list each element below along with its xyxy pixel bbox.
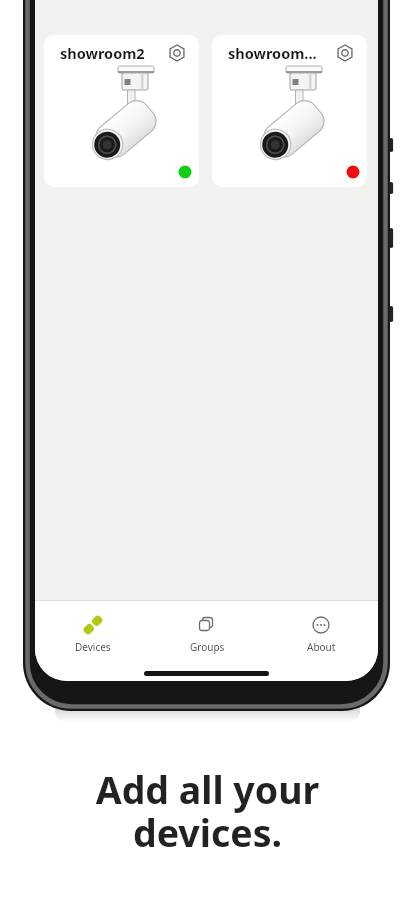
staticText: About <box>307 640 336 654</box>
button[interactable]: showroom... <box>212 35 367 187</box>
button[interactable]: Groups <box>150 601 264 654</box>
button[interactable]: showroom2 <box>44 35 199 187</box>
staticText: Devices <box>75 640 111 654</box>
button[interactable] <box>333 41 357 65</box>
button[interactable] <box>165 41 189 65</box>
staticText: Add all your devices. <box>0 764 415 858</box>
staticText: Groups <box>190 640 225 654</box>
button[interactable]: Devices <box>35 601 150 654</box>
staticText: showroom2 <box>60 43 145 63</box>
staticText: showroom... <box>228 43 317 63</box>
button[interactable]: About <box>264 601 378 654</box>
